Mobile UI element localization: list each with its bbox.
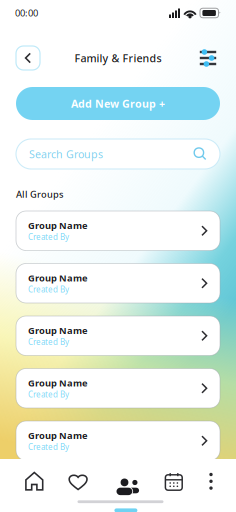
staticText: Created By bbox=[28, 232, 69, 242]
staticText: Group Name bbox=[28, 324, 88, 337]
button[interactable]: Home bbox=[25, 472, 44, 491]
staticText: Search Groups bbox=[29, 147, 103, 161]
staticText: Add New Group + bbox=[71, 96, 165, 111]
staticText: Group Name bbox=[28, 429, 88, 442]
staticText: Group Name bbox=[28, 272, 88, 284]
button[interactable]: Groups bbox=[113, 473, 136, 491]
staticText: Created By bbox=[28, 442, 69, 452]
button[interactable]: Group Name bbox=[16, 421, 220, 460]
staticText: Created By bbox=[28, 337, 69, 347]
button[interactable]: Group Name bbox=[16, 263, 220, 303]
button[interactable]: Favorites bbox=[68, 473, 88, 490]
staticText: All Groups bbox=[16, 188, 64, 200]
button[interactable]: Calendar bbox=[165, 472, 183, 491]
button[interactable]: Filter bbox=[196, 46, 220, 70]
button[interactable]: Group Name bbox=[16, 316, 220, 355]
staticText: Family & Friends bbox=[74, 51, 161, 65]
staticText: Created By bbox=[28, 389, 69, 400]
button[interactable]: Back bbox=[16, 46, 40, 70]
button[interactable]: Group Name bbox=[16, 211, 220, 250]
button[interactable]: Add New Group + bbox=[16, 87, 220, 120]
staticText: Created By bbox=[28, 284, 69, 295]
button[interactable]: More bbox=[209, 472, 213, 491]
staticText: 00:00 bbox=[15, 7, 38, 19]
staticText: Group Name bbox=[28, 377, 88, 389]
staticText: Group Name bbox=[28, 219, 88, 232]
button[interactable]: Group Name bbox=[16, 368, 220, 408]
